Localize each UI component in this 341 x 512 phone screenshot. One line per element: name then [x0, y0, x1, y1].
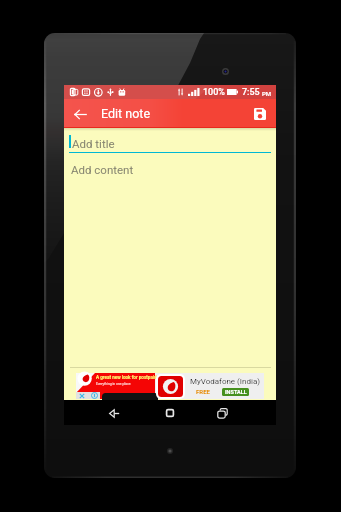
- button[interactable]: Close ad: [76, 392, 88, 399]
- staticText: A great new look for postpaid: [96, 375, 157, 380]
- staticText: PM: [262, 90, 272, 97]
- button[interactable]: Save note: [248, 102, 272, 126]
- staticText: MyVodafone (India): [190, 377, 261, 386]
- staticText: INSTALL: [225, 389, 247, 395]
- button[interactable]: Add title: [64, 135, 276, 148]
- button[interactable]: Home: [158, 401, 182, 425]
- staticText: 100%: [203, 87, 225, 98]
- button[interactable]: Recent apps: [210, 401, 234, 425]
- button[interactable]: Add content: [71, 163, 134, 176]
- button[interactable]: Back: [102, 401, 126, 425]
- button[interactable]: A great new look for postpaid: [76, 373, 264, 399]
- button[interactable]: Back: [70, 104, 90, 124]
- staticText: Edit note: [101, 106, 151, 121]
- staticText: Everything in one place: [96, 382, 131, 386]
- button[interactable]: INSTALL: [222, 388, 249, 396]
- staticText: FREE: [196, 388, 210, 395]
- staticText: 7:55: [242, 87, 260, 98]
- staticText: Add title: [72, 137, 115, 150]
- button[interactable]: Ad info: [88, 392, 100, 399]
